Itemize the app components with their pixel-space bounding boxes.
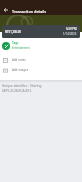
staticText: 6EF9-2C28-6CA-B12	[2, 89, 32, 93]
button[interactable]: Add images	[0, 66, 82, 74]
button[interactable]: Tags	[0, 40, 82, 51]
staticText: Entertainment	[12, 46, 30, 50]
staticText: Add notes	[12, 58, 26, 62]
staticText: 5:39 PM	[66, 27, 77, 31]
staticText: Add images	[12, 68, 29, 72]
staticText: Transaction details	[12, 9, 47, 14]
staticText: Tags	[12, 41, 19, 45]
staticText: Unique identifier - Sharing	[2, 84, 42, 88]
button[interactable]: Add notes	[0, 56, 82, 64]
button[interactable]: Back	[2, 6, 9, 13]
staticText: 1/14/2023	[63, 32, 77, 36]
staticText: NT$1,250.00	[5, 30, 21, 34]
